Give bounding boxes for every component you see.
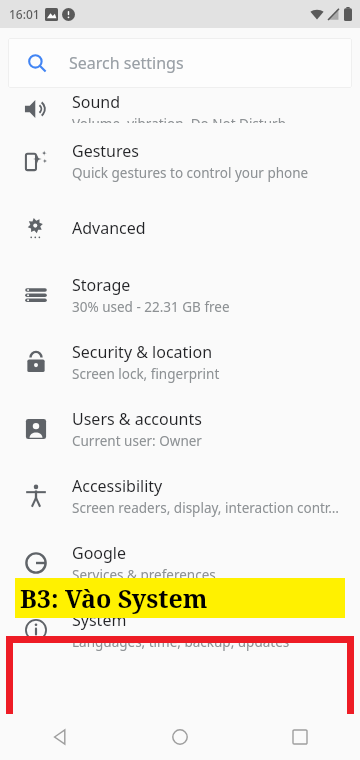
staticText: Quick gestures to control your phone xyxy=(72,164,309,182)
staticText: Screen readers, display, interaction con… xyxy=(72,499,339,517)
staticText: Services & preferences xyxy=(72,566,216,584)
staticText: Sound xyxy=(72,91,121,113)
staticText: Google xyxy=(72,542,127,564)
staticText: System xyxy=(72,609,127,631)
button[interactable]: Recent apps xyxy=(240,714,360,760)
staticText: Users & accounts xyxy=(72,408,202,430)
staticText: 30% used - 22.31 GB free xyxy=(72,298,230,316)
staticText: B3: Vào System xyxy=(20,581,208,615)
button[interactable]: Back xyxy=(0,714,120,760)
staticText: Accessibility xyxy=(72,475,163,497)
staticText: Languages, time, backup, updates xyxy=(72,633,290,651)
button[interactable]: Google xyxy=(0,529,360,596)
button[interactable]: Users & accounts xyxy=(0,395,360,462)
staticText: Gestures xyxy=(72,140,139,162)
button[interactable]: Home xyxy=(120,714,240,760)
button[interactable]: Gestures xyxy=(0,127,360,194)
button[interactable]: Search settings xyxy=(8,38,352,88)
staticText: Storage xyxy=(72,274,131,296)
button[interactable]: System xyxy=(0,596,360,663)
staticText: Volume, vibration, Do Not Disturb xyxy=(72,115,286,123)
staticText: Screen lock, fingerprint xyxy=(72,365,220,383)
staticText: Advanced xyxy=(72,217,146,239)
button[interactable]: Storage xyxy=(0,261,360,328)
staticText: Search settings xyxy=(69,52,184,74)
button[interactable]: Accessibility xyxy=(0,462,360,529)
button[interactable]: Sound xyxy=(0,91,360,127)
button[interactable]: Advanced xyxy=(0,194,360,261)
staticText: 16:01 xyxy=(9,6,40,22)
staticText: Security & location xyxy=(72,341,213,363)
button[interactable]: Security & location xyxy=(0,328,360,395)
staticText: Current user: Owner xyxy=(72,432,202,450)
